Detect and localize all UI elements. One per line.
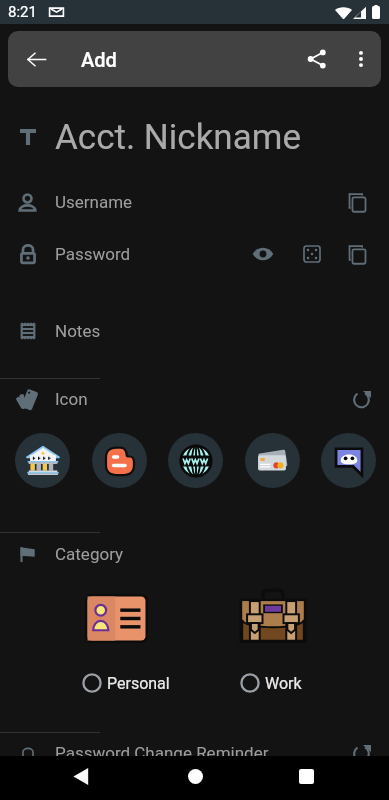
button[interactable]: Bank icon [15,433,70,488]
button[interactable]: Discord icon [321,433,376,488]
button[interactable]: Reset reminder [341,733,383,773]
staticText: Password Change Reminder [55,743,269,763]
staticText: Acct. Nickname [55,117,301,158]
button[interactable]: Password [0,228,389,280]
button[interactable]: Generate password [290,232,334,276]
button[interactable]: Show password [241,232,285,276]
button[interactable]: Shuffle icons [341,379,383,419]
button[interactable]: Back [12,35,60,83]
staticText: Username [55,192,133,212]
button[interactable]: Back [60,757,102,799]
staticText: Personal [107,674,170,693]
staticText: Category [55,544,124,564]
staticText: Add [81,48,117,71]
button[interactable]: Share [293,35,341,83]
button[interactable]: Blogger icon [92,433,147,488]
staticText: 8:21 [8,3,37,21]
button[interactable]: More options [341,39,381,79]
staticText: Password [55,244,131,264]
button[interactable]: Work [194,594,389,693]
staticText: Work [265,674,302,693]
button[interactable]: Card icon [245,433,300,488]
button[interactable]: Username [0,176,389,228]
button[interactable]: Notes [0,305,389,357]
staticText: Icon [55,389,88,409]
button[interactable]: Recents [285,757,327,799]
button[interactable]: Copy password [335,232,379,276]
button[interactable]: Personal [0,594,194,693]
button[interactable]: Acct. Nickname [0,111,389,163]
button[interactable]: Copy username [335,180,379,224]
staticText: Notes [55,321,101,341]
button[interactable]: Home [174,757,216,799]
button[interactable]: Website icon [168,433,223,488]
